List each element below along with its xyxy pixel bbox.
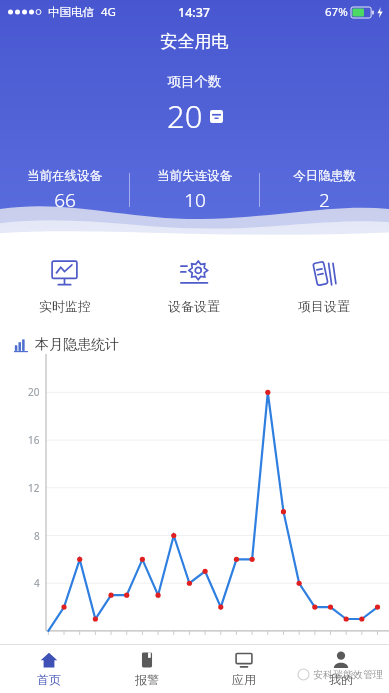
staticText: 当前在线设备 [27, 168, 102, 184]
button[interactable]: 项目设置 [259, 240, 389, 332]
staticText: 报警 [135, 672, 159, 687]
staticText: 14:37 [178, 4, 211, 21]
staticText: 本月隐患统计 [35, 336, 119, 354]
button[interactable]: 应用 [195, 645, 292, 693]
button[interactable]: 本月隐患统计 [14, 336, 389, 354]
staticText: 4G [101, 4, 116, 20]
button[interactable]: 我的 [292, 645, 389, 693]
button[interactable]: 今日隐患数 [260, 168, 389, 213]
staticText: 安全用电 [0, 31, 389, 52]
staticText: 2 [319, 187, 330, 213]
other: 项目个数 [210, 110, 223, 123]
staticText: 中国电信 [48, 5, 94, 19]
staticText: 67% [325, 4, 348, 20]
staticText: 20 [167, 95, 203, 137]
staticText: 今日隐患数 [293, 168, 356, 184]
staticText: 实时监控 [39, 298, 91, 314]
staticText: 设备设置 [168, 298, 220, 314]
staticText: 首页 [37, 672, 61, 687]
button[interactable]: 实时监控 [0, 240, 129, 332]
staticText: 当前失连设备 [157, 168, 232, 184]
button[interactable]: 报警 [98, 645, 195, 693]
button[interactable]: 当前在线设备 [0, 168, 129, 213]
staticText: 我的 [329, 672, 353, 687]
staticText: 项目个数 [0, 73, 389, 90]
staticText: 66 [54, 187, 76, 213]
staticText: 应用 [232, 672, 256, 687]
staticText: 10 [184, 187, 206, 213]
staticText: 项目设置 [298, 298, 350, 314]
button[interactable]: 设备设置 [129, 240, 259, 332]
button[interactable]: 当前失连设备 [130, 168, 259, 213]
staticText: 安科瑞能效管理 [313, 668, 383, 681]
button[interactable]: 首页 [0, 645, 98, 693]
